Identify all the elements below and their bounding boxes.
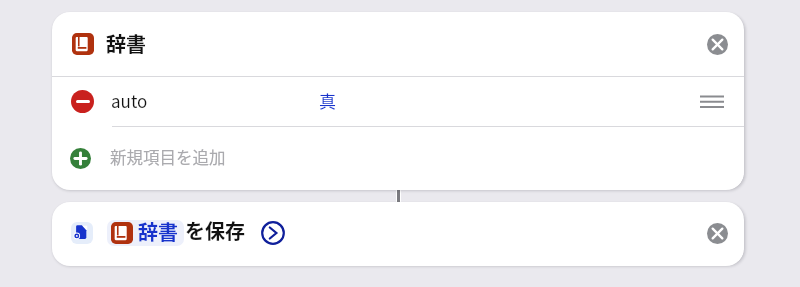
staticText: 真 — [319, 88, 336, 113]
button[interactable]: Remove action — [707, 34, 728, 55]
button[interactable]: 新規項目を追加 — [52, 127, 744, 190]
button[interactable]: Reorder — [699, 91, 725, 113]
button[interactable]: Show more — [260, 220, 286, 246]
staticText: auto — [111, 88, 148, 113]
button[interactable]: 辞書 — [52, 12, 744, 76]
button[interactable]: Remove action — [707, 223, 728, 244]
staticText: 辞書 — [138, 220, 178, 243]
staticText: 辞書 — [106, 29, 146, 58]
button[interactable]: 辞書 — [52, 202, 744, 266]
staticText: 新規項目を追加 — [110, 145, 226, 169]
button[interactable]: auto — [52, 77, 744, 126]
staticText: を保存 — [185, 216, 245, 245]
